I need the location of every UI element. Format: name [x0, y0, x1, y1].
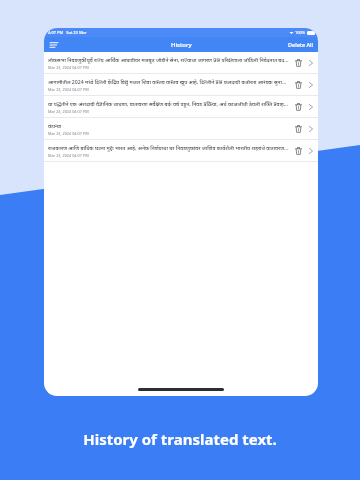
button[interactable]: आगामीतील 2024 मध्ये दिल्ली केंद्रिय विद्…: [44, 74, 318, 95]
staticText: Mar 23, 2024 04:07 PM: [48, 131, 89, 136]
button[interactable]: Open entry: [305, 57, 316, 68]
button[interactable]: Open entry: [305, 101, 316, 112]
staticText: Delete All: [288, 41, 314, 48]
button[interactable]: Open entry: [305, 79, 316, 90]
staticText: Mar 23, 2024 04:07 PM: [48, 109, 89, 114]
button[interactable]: कंपन्या: [44, 118, 318, 139]
button[interactable]: लोकसभा निवडणुकीपूर्वे राज्य आर्थिक आघाडी…: [44, 52, 318, 73]
staticText: Mar 23, 2024 04:07 PM: [48, 65, 89, 70]
button[interactable]: या पद्धतीने एक अंशदायी वैज्ञानिक चाचणा, …: [44, 96, 318, 117]
button[interactable]: Delete entry: [292, 56, 305, 69]
staticText: 4:07 PM Sat 23 Mar: [48, 30, 87, 35]
button[interactable]: Open entry: [305, 145, 316, 156]
staticText: 100%: [295, 30, 306, 35]
staticText: History: [171, 41, 192, 49]
button[interactable]: Open navigation menu: [48, 39, 59, 50]
staticText: लोकसभा निवडणुकीपूर्वे राज्य आर्थिक आघाडी…: [48, 56, 289, 63]
staticText: आगामीतील 2024 मध्ये दिल्ली केंद्रिय विद्…: [48, 78, 289, 85]
button[interactable]: Open entry: [305, 123, 316, 134]
button[interactable]: Delete entry: [292, 122, 305, 135]
staticText: कंपन्या: [48, 122, 62, 129]
button[interactable]: Delete All: [284, 39, 318, 50]
staticText: राजकारण आणि बांधिक घटना मुद्दा भारत आहे,…: [48, 144, 289, 151]
button[interactable]: Delete entry: [292, 100, 305, 113]
button[interactable]: Delete entry: [292, 78, 305, 91]
button[interactable]: Delete entry: [292, 144, 305, 157]
staticText: History of translated text.: [0, 429, 360, 449]
button[interactable]: राजकारण आणि बांधिक घटना मुद्दा भारत आहे,…: [44, 140, 318, 161]
staticText: Mar 23, 2024 04:07 PM: [48, 87, 89, 92]
staticText: Mar 23, 2024 04:07 PM: [48, 153, 89, 158]
staticText: या पद्धतीने एक अंशदायी वैज्ञानिक चाचणा, …: [48, 100, 289, 107]
